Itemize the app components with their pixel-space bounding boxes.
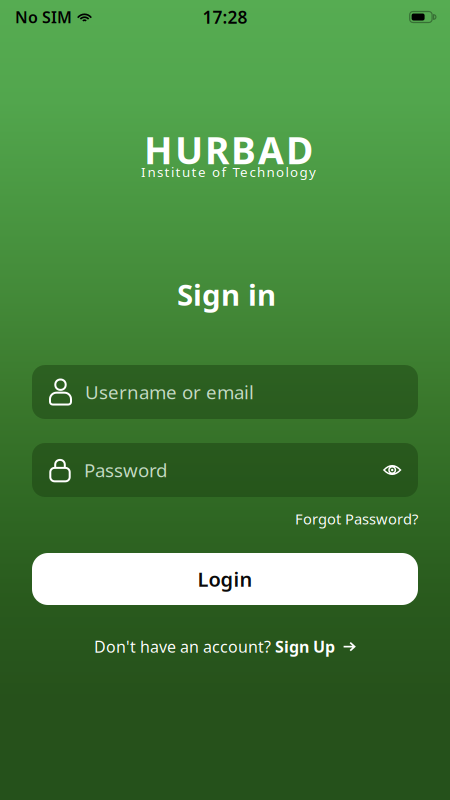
- staticText: Password: [84, 458, 167, 482]
- staticText: Login: [197, 566, 252, 592]
- button[interactable]: Don't have an account?: [94, 632, 356, 661]
- staticText: Sign in: [177, 275, 276, 314]
- staticText: No SIM: [15, 6, 72, 28]
- staticText: Sign Up: [275, 636, 335, 657]
- button[interactable]: Forgot Password?: [289, 506, 418, 531]
- button[interactable]: Show password: [373, 455, 401, 485]
- button[interactable]: Login: [32, 553, 418, 605]
- staticText: Institute of Technology: [141, 163, 316, 181]
- staticText: Username or email: [85, 380, 254, 404]
- staticText: 17:28: [202, 5, 247, 28]
- staticText: Forgot Password?: [295, 509, 418, 528]
- staticText: Don't have an account?: [94, 636, 275, 657]
- staticText: HURBAD: [144, 125, 313, 175]
